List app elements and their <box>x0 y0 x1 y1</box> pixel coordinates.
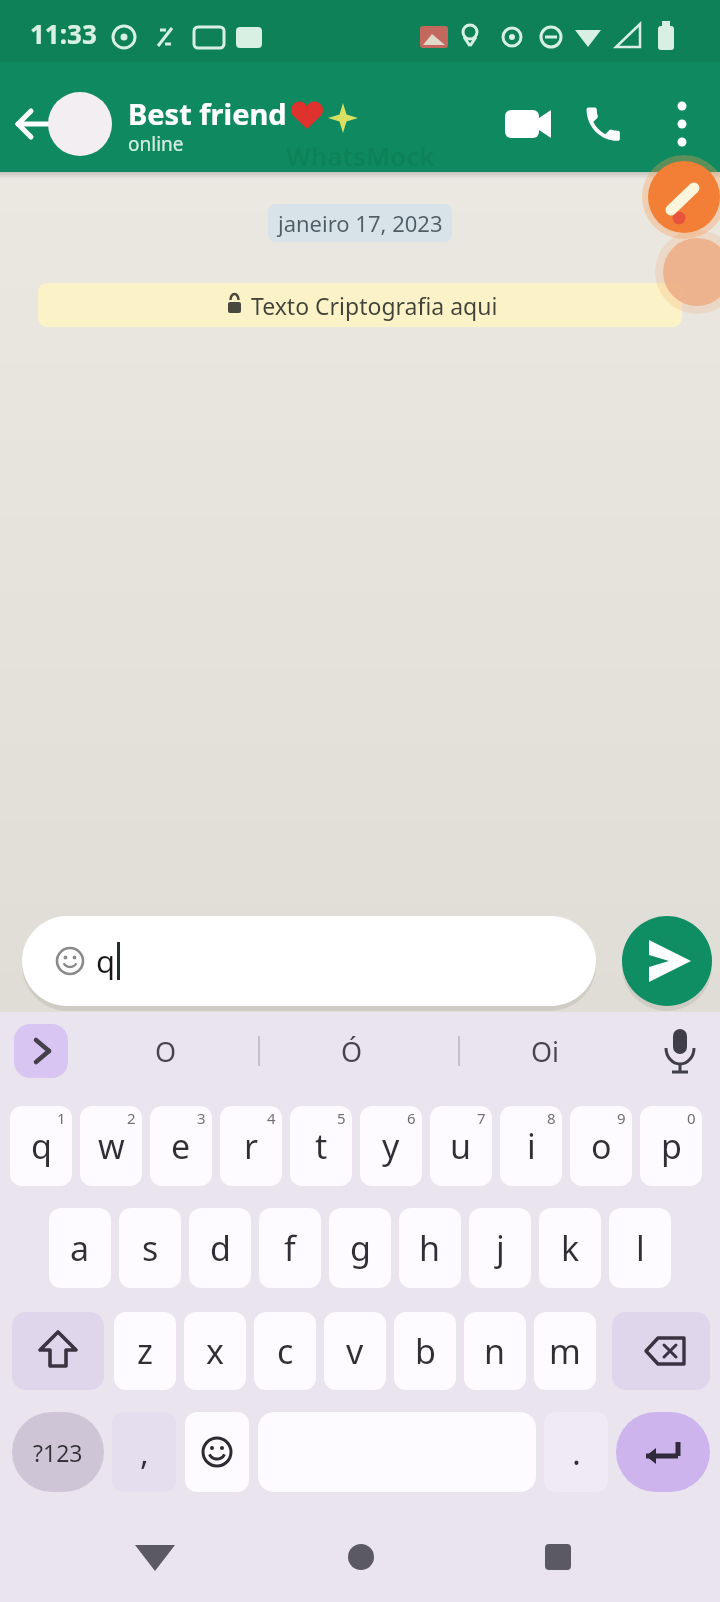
button[interactable]: m <box>534 1312 596 1390</box>
staticText: n <box>484 1328 506 1374</box>
button[interactable] <box>612 1312 710 1390</box>
staticText: 3 <box>197 1108 206 1128</box>
staticText: WhatsMock <box>286 138 435 170</box>
staticText: , <box>140 1430 149 1475</box>
button[interactable] <box>622 916 712 1006</box>
staticText: q <box>31 1123 52 1169</box>
button[interactable] <box>48 92 112 156</box>
staticText: 2 <box>127 1108 136 1128</box>
staticText: t <box>315 1123 328 1169</box>
button[interactable]: k <box>539 1208 601 1288</box>
button[interactable] <box>663 238 720 306</box>
button[interactable]: O <box>110 1024 222 1078</box>
staticText: g <box>350 1225 371 1271</box>
button[interactable]: l <box>609 1208 671 1288</box>
button[interactable]: t <box>290 1106 352 1186</box>
staticText: b <box>415 1328 436 1374</box>
button[interactable]: f <box>259 1208 321 1288</box>
button[interactable]: i <box>500 1106 562 1186</box>
staticText: u <box>450 1123 472 1169</box>
button[interactable]: Oi <box>489 1024 601 1078</box>
button[interactable]: q <box>22 916 596 1006</box>
button[interactable]: u <box>430 1106 492 1186</box>
button[interactable]: ?123 <box>12 1412 104 1492</box>
button[interactable] <box>10 96 62 152</box>
staticText: 1 <box>57 1108 66 1128</box>
staticText: Ó <box>341 1033 363 1070</box>
button[interactable]: d <box>189 1208 251 1288</box>
button[interactable] <box>662 96 702 152</box>
button[interactable]: q <box>10 1106 72 1186</box>
staticText: online <box>128 131 184 157</box>
button[interactable]: v <box>324 1312 386 1390</box>
staticText: l <box>636 1225 645 1271</box>
button[interactable]: Best friend <box>128 94 428 132</box>
staticText: 6 <box>407 1108 416 1128</box>
button[interactable] <box>648 161 720 233</box>
button[interactable]: r <box>220 1106 282 1186</box>
button[interactable]: e <box>150 1106 212 1186</box>
button[interactable]: x <box>184 1312 246 1390</box>
staticText: w <box>98 1123 125 1169</box>
staticText: s <box>142 1225 159 1271</box>
button[interactable]: Texto Criptografia aqui <box>38 283 682 327</box>
button[interactable]: y <box>360 1106 422 1186</box>
staticText: 5 <box>337 1108 346 1128</box>
staticText: q <box>96 940 116 982</box>
button[interactable]: . <box>544 1412 608 1492</box>
button[interactable]: s <box>119 1208 181 1288</box>
button[interactable]: o <box>570 1106 632 1186</box>
staticText: f <box>284 1225 296 1271</box>
button[interactable] <box>656 1024 704 1078</box>
staticText: r <box>244 1123 259 1169</box>
staticText: 7 <box>477 1108 486 1128</box>
button[interactable]: z <box>114 1312 176 1390</box>
staticText: Best friend <box>128 94 287 132</box>
button[interactable]: h <box>399 1208 461 1288</box>
staticText: 8 <box>547 1108 556 1128</box>
staticText: 9 <box>617 1108 626 1128</box>
staticText: Oi <box>531 1033 560 1070</box>
staticText: o <box>591 1123 612 1169</box>
staticText: a <box>70 1225 90 1271</box>
button[interactable] <box>12 1312 104 1390</box>
button[interactable] <box>532 1531 584 1583</box>
staticText: i <box>527 1123 536 1169</box>
staticText: m <box>549 1328 581 1374</box>
button[interactable]: c <box>254 1312 316 1390</box>
staticText: j <box>496 1225 505 1271</box>
button[interactable]: p <box>640 1106 702 1186</box>
button[interactable]: , <box>112 1412 176 1492</box>
button[interactable]: Ó <box>296 1024 408 1078</box>
staticText: p <box>661 1123 682 1169</box>
button[interactable] <box>577 98 629 150</box>
button[interactable]: n <box>464 1312 526 1390</box>
button[interactable]: a <box>49 1208 111 1288</box>
button[interactable]: j <box>469 1208 531 1288</box>
staticText: e <box>171 1123 191 1169</box>
staticText: h <box>419 1225 441 1271</box>
button[interactable] <box>14 1024 68 1078</box>
staticText: k <box>561 1225 580 1271</box>
button[interactable] <box>499 98 555 150</box>
staticText: O <box>155 1033 177 1070</box>
staticText: x <box>206 1328 224 1374</box>
button[interactable] <box>185 1412 249 1492</box>
staticText: 11:33 <box>30 16 97 48</box>
staticText: v <box>346 1328 364 1374</box>
button[interactable] <box>616 1412 710 1492</box>
staticText: c <box>277 1328 294 1374</box>
button[interactable] <box>335 1531 387 1583</box>
staticText: . <box>572 1430 581 1475</box>
staticText: janeiro 17, 2023 <box>278 208 443 238</box>
staticText: y <box>382 1123 400 1169</box>
button[interactable] <box>129 1531 181 1583</box>
button[interactable]: w <box>80 1106 142 1186</box>
staticText: ?123 <box>33 1437 83 1468</box>
button[interactable]: g <box>329 1208 391 1288</box>
staticText: 0 <box>687 1108 696 1128</box>
staticText: d <box>210 1225 231 1271</box>
button[interactable]: b <box>394 1312 456 1390</box>
staticText: 4 <box>267 1108 276 1128</box>
